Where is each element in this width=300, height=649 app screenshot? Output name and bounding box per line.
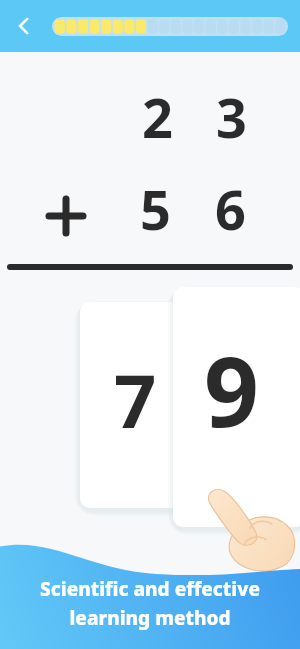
staticText: 3 [216, 80, 247, 154]
staticText: 9 [204, 324, 259, 455]
staticText: 2 [142, 80, 173, 154]
button[interactable]: Lesson progress [52, 17, 288, 36]
staticText: 6 [215, 172, 246, 246]
staticText: 5 [140, 172, 171, 246]
button[interactable]: 9 [173, 287, 300, 527]
button[interactable]: 7 [80, 302, 190, 508]
button[interactable]: Back [6, 8, 42, 44]
staticText: Scientific and effective [40, 576, 260, 602]
staticText: 7 [114, 349, 157, 450]
staticText: learning method [69, 605, 231, 631]
